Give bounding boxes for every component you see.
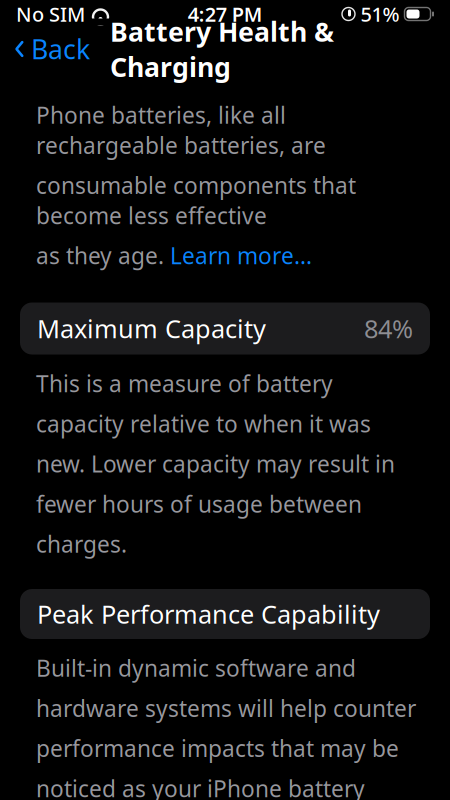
staticText: Maximum Capacity xyxy=(37,312,266,345)
staticText: consumable components that become less e… xyxy=(36,170,356,230)
button[interactable]: Learn more... xyxy=(170,240,312,270)
staticText: Built-in dynamic software and hardware s… xyxy=(36,653,416,800)
staticText: Peak Performance Capability xyxy=(37,597,380,631)
button[interactable]: Back xyxy=(0,25,98,73)
staticText: No SIM xyxy=(16,1,85,27)
staticText: 51% xyxy=(360,1,399,27)
staticText: Phone batteries, like all rechargeable b… xyxy=(36,100,326,160)
staticText: Battery Health & Charging xyxy=(110,14,334,84)
staticText: Back xyxy=(31,31,90,67)
button[interactable]: Peak Performance Capability xyxy=(0,589,450,639)
staticText: as they age. xyxy=(36,240,170,270)
staticText: This is a measure of battery capacity re… xyxy=(36,368,395,559)
staticText: Learn more... xyxy=(170,240,312,270)
staticText: 4:27 PM xyxy=(188,1,263,27)
staticText: 84% xyxy=(364,312,413,345)
